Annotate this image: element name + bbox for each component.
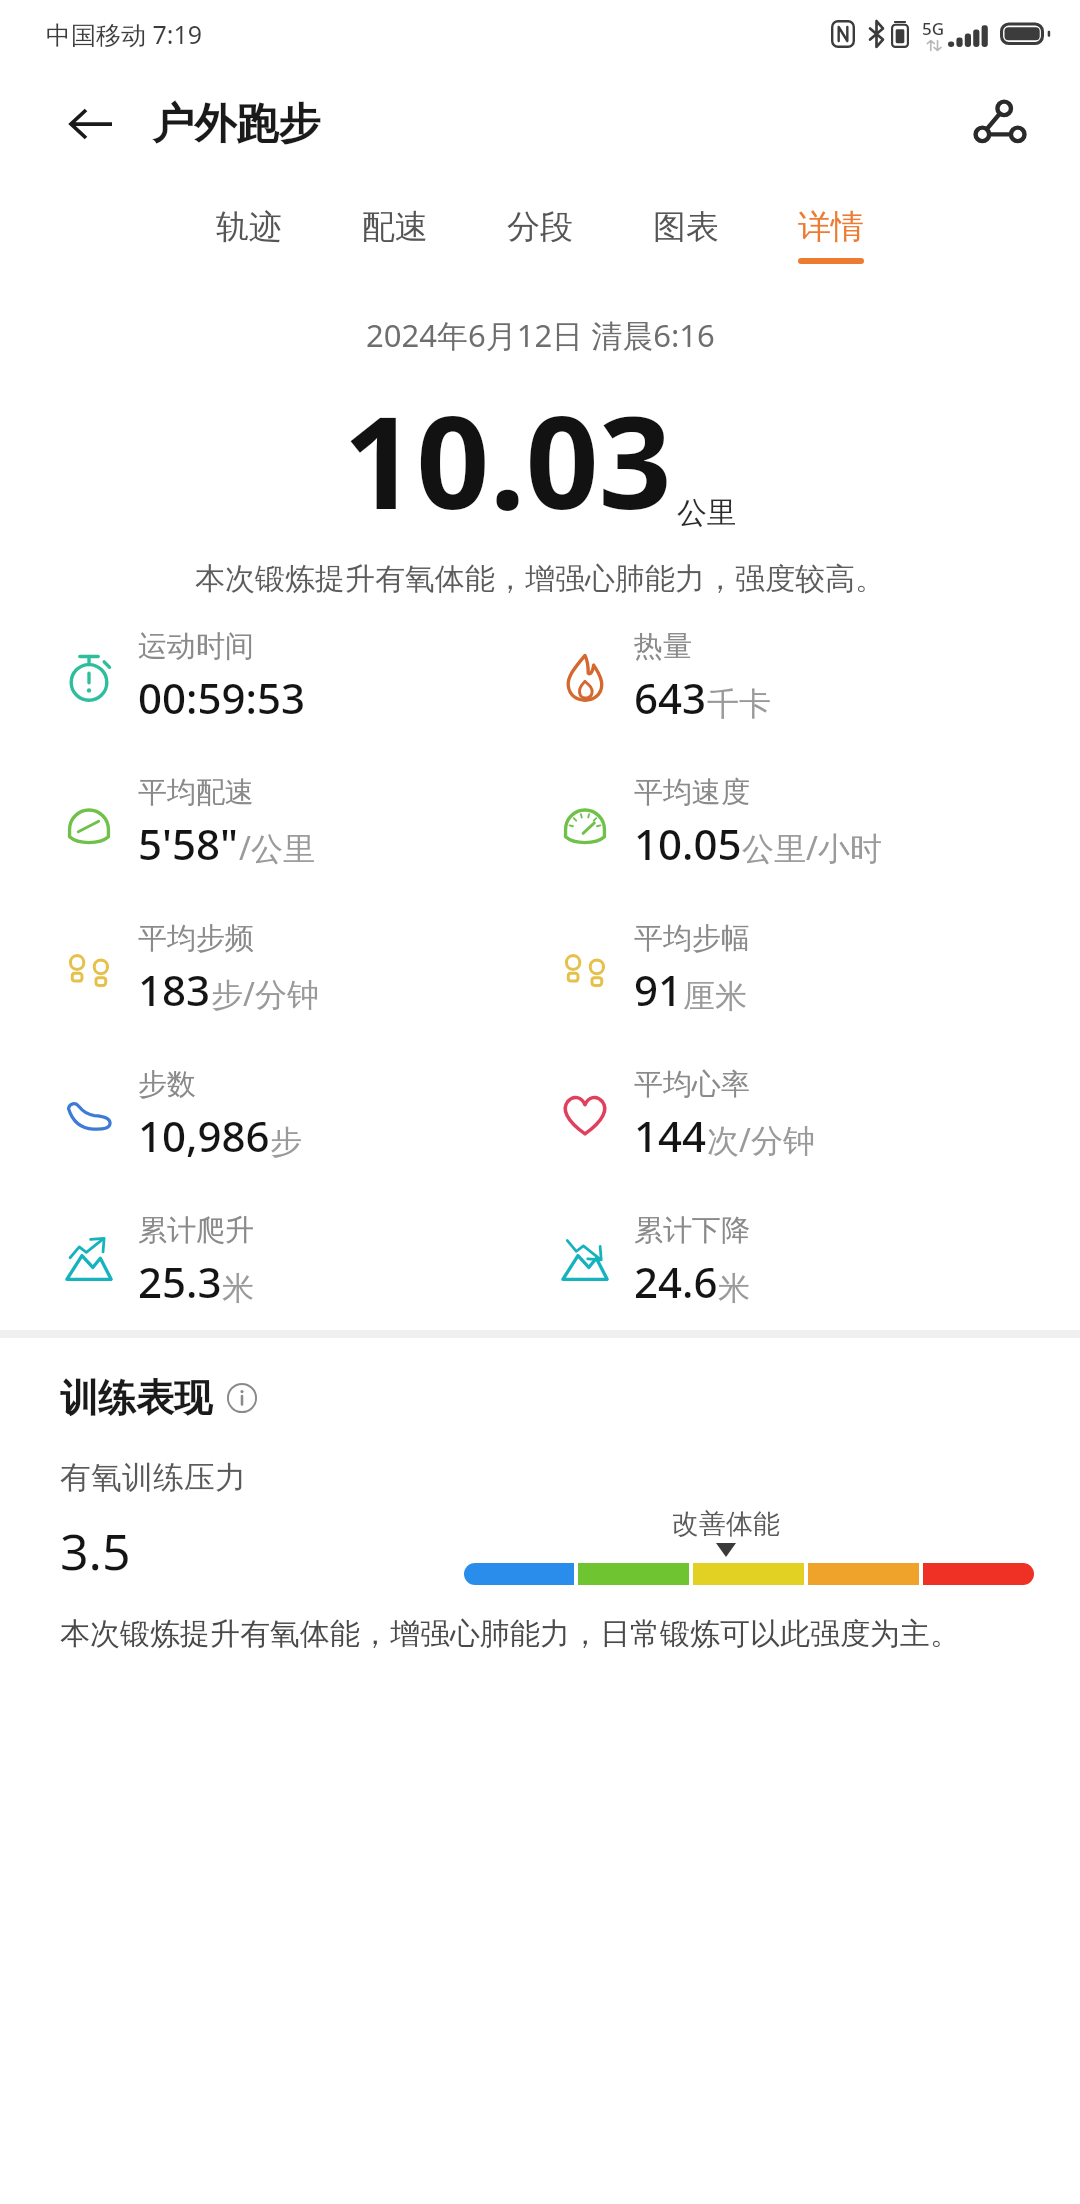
button[interactable]: 训练表现 <box>60 1374 258 1422</box>
staticText: 平均步频 <box>138 920 254 957</box>
button[interactable]: 详情 <box>794 200 868 270</box>
button[interactable]: Back <box>58 91 124 157</box>
staticText: 中国移动 7:19 <box>46 17 203 51</box>
staticText: 改善体能 <box>672 1507 780 1541</box>
staticText: 米 <box>718 1268 750 1308</box>
staticText: 次/分钟 <box>707 1118 815 1162</box>
staticText: 10,986 <box>138 1107 270 1164</box>
staticText: 5G <box>922 17 945 40</box>
staticText: 厘米 <box>683 976 747 1016</box>
staticText: 公里 <box>677 494 737 532</box>
staticText: 144 <box>634 1107 707 1164</box>
button[interactable]: 热量 <box>540 624 1080 730</box>
staticText: 图表 <box>653 206 719 248</box>
staticText: 平均步幅 <box>634 920 750 957</box>
staticText: 分段 <box>507 206 573 248</box>
staticText: 米 <box>222 1268 254 1308</box>
staticText: 5'58" <box>138 815 239 872</box>
staticText: 25.3 <box>138 1253 222 1310</box>
staticText: 轨迹 <box>216 206 282 248</box>
staticText: 户外跑步 <box>152 98 320 151</box>
button[interactable]: 平均步幅 <box>540 916 1080 1022</box>
staticText: 配速 <box>362 206 428 248</box>
button[interactable]: 累计下降 <box>540 1208 1080 1314</box>
staticText: 本次锻炼提升有氧体能，增强心肺能力，日常锻炼可以此强度为主。 <box>60 1615 960 1653</box>
staticText: 步/分钟 <box>211 972 319 1016</box>
staticText: 00:59:53 <box>138 669 305 726</box>
staticText: 热量 <box>634 628 692 665</box>
staticText: 183 <box>138 961 211 1018</box>
button[interactable]: 轨迹 <box>212 200 286 270</box>
button[interactable]: 步数 <box>0 1062 540 1168</box>
button[interactable]: 平均速度 <box>540 770 1080 876</box>
staticText: 千卡 <box>707 684 771 724</box>
staticText: /公里 <box>239 826 315 870</box>
staticText: 公里/小时 <box>742 826 882 870</box>
staticText: 平均配速 <box>138 774 254 811</box>
staticText: 累计爬升 <box>138 1212 254 1249</box>
staticText: 本次锻炼提升有氧体能，增强心肺能力，强度较高。 <box>195 560 885 598</box>
button[interactable]: 平均心率 <box>540 1062 1080 1168</box>
staticText: 10.03 <box>343 372 672 546</box>
staticText: 详情 <box>798 206 864 248</box>
staticText: 24.6 <box>634 1253 718 1310</box>
staticText: 2024年6月12日 清晨6:16 <box>366 314 715 356</box>
staticText: 运动时间 <box>138 628 254 665</box>
staticText: 平均心率 <box>634 1066 750 1103</box>
staticText: 有氧训练压力 <box>60 1458 246 1497</box>
button[interactable]: 平均配速 <box>0 770 540 876</box>
staticText: 10.05 <box>634 815 742 872</box>
button[interactable]: 平均步频 <box>0 916 540 1022</box>
button[interactable]: 累计爬升 <box>0 1208 540 1314</box>
button[interactable]: 运动时间 <box>0 624 540 730</box>
staticText: 643 <box>634 669 707 726</box>
other: Info <box>226 1382 258 1414</box>
staticText: 平均速度 <box>634 774 750 811</box>
button[interactable]: 分段 <box>503 200 577 270</box>
button[interactable]: Share <box>964 89 1034 159</box>
staticText: 步 <box>270 1122 302 1162</box>
staticText: 训练表现 <box>60 1374 212 1422</box>
staticText: 累计下降 <box>634 1212 750 1249</box>
staticText: 3.5 <box>60 1517 131 1585</box>
button[interactable]: 图表 <box>649 200 723 270</box>
button[interactable]: 配速 <box>358 200 432 270</box>
staticText: 步数 <box>138 1066 196 1103</box>
staticText: 91 <box>634 961 683 1018</box>
